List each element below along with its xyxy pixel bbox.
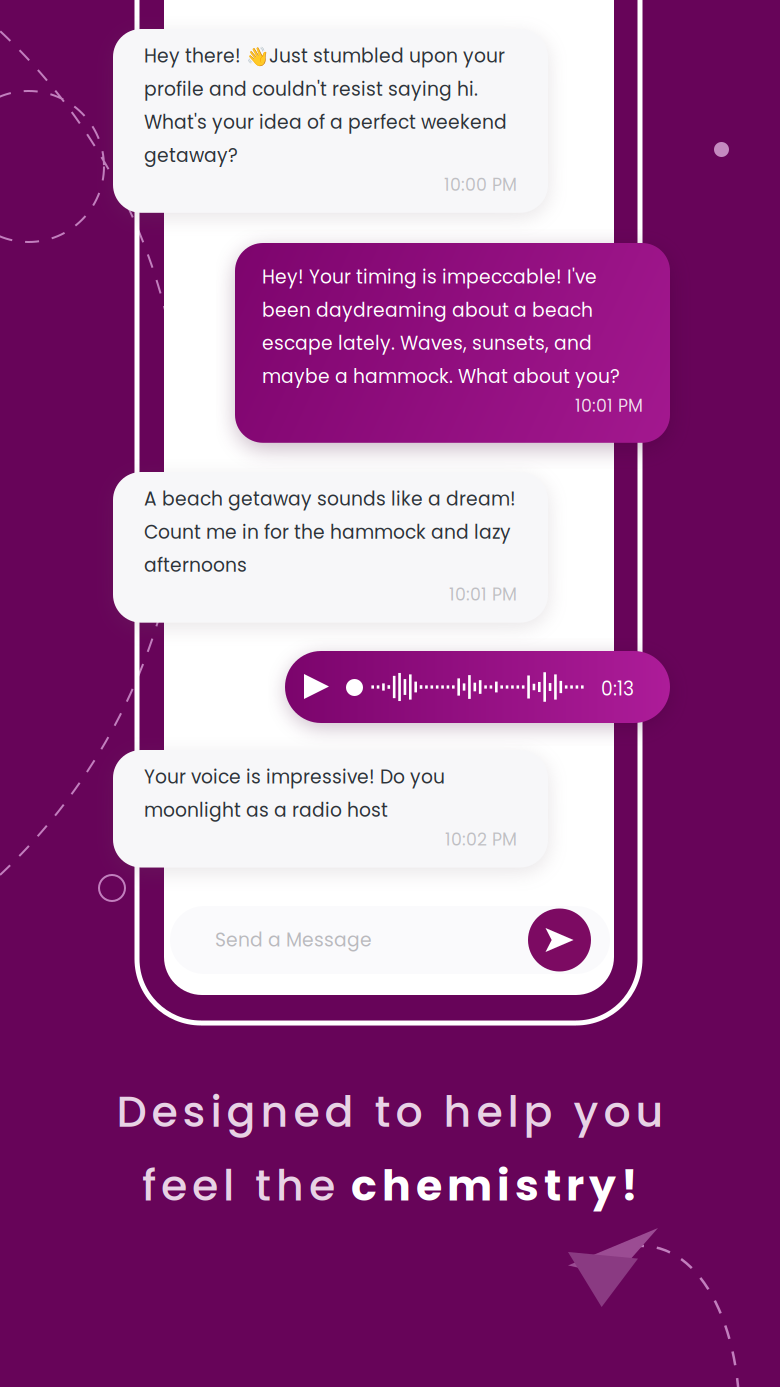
staticText: Send a Message: [215, 927, 372, 953]
staticText: A beach getaway sounds like a dream! Cou…: [144, 486, 516, 578]
staticText: Hey! Your timing is impeccable! I've bee…: [262, 264, 620, 389]
staticText: Hey there! 👋Just stumbled upon your prof…: [144, 43, 507, 168]
staticText: chemistry!: [351, 1156, 638, 1215]
staticText: 10:00 PM: [444, 172, 517, 197]
staticText: Your voice is impressive! Do you moonlig…: [144, 764, 445, 823]
button[interactable]: Send: [528, 908, 591, 971]
staticText: 10:02 PM: [445, 827, 517, 852]
staticText: Designed to help you: [116, 1082, 663, 1142]
staticText: 10:01 PM: [575, 393, 643, 418]
staticText: 0:13: [601, 676, 634, 702]
staticText: feel the: [142, 1156, 351, 1215]
staticText: 10:01 PM: [449, 582, 517, 607]
